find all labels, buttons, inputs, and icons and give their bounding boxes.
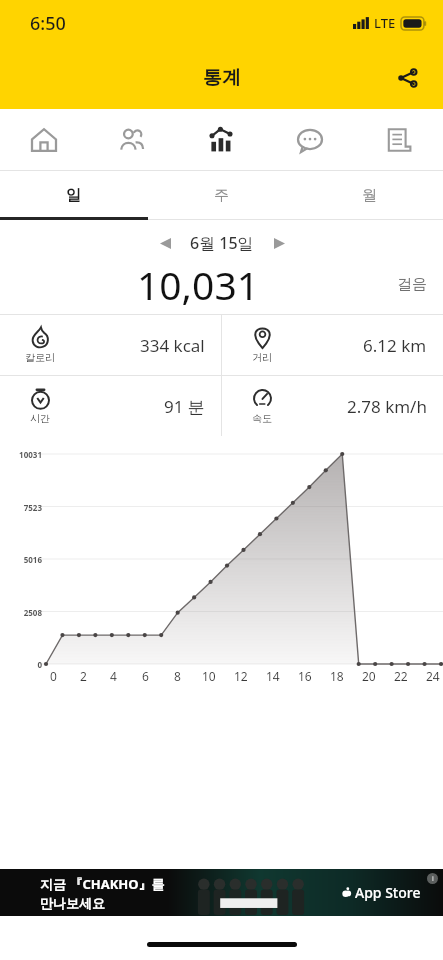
button[interactable]: Statistics xyxy=(176,109,265,171)
button[interactable]: 칼로리 xyxy=(0,315,221,375)
staticText: 지금 『CHAKHO』를 xyxy=(40,875,165,893)
staticText: 0 xyxy=(50,668,57,684)
staticText: 속도 xyxy=(252,412,272,425)
staticText: 6 xyxy=(142,668,149,684)
button[interactable]: 일 xyxy=(0,171,147,220)
staticText: 통계 xyxy=(203,66,241,90)
staticText: 7523 xyxy=(23,502,42,513)
staticText: 시간 xyxy=(30,412,50,425)
staticText: 16 xyxy=(298,668,312,684)
staticText: i xyxy=(432,874,434,884)
staticText: 14 xyxy=(266,668,280,684)
button[interactable]: Chat xyxy=(265,109,354,171)
staticText: 8 xyxy=(174,668,181,684)
staticText: 12 xyxy=(234,668,248,684)
staticText: 거리 xyxy=(252,351,272,364)
button[interactable]: 주 xyxy=(147,171,295,220)
staticText: LTE xyxy=(374,14,396,32)
staticText: 10 xyxy=(202,668,216,684)
staticText: 2 xyxy=(80,668,87,684)
button[interactable]: 지금 『CHAKHO』를 xyxy=(0,869,443,916)
button[interactable]: Ad info xyxy=(427,873,438,884)
staticText: 월 xyxy=(362,186,377,205)
staticText: 주 xyxy=(214,186,229,205)
staticText: 20 xyxy=(362,668,376,684)
staticText: 2.78 km/h xyxy=(347,395,427,418)
button[interactable]: Friends xyxy=(88,109,176,171)
button[interactable]: Next day xyxy=(266,230,292,256)
staticText: 만나보세요 xyxy=(40,895,105,911)
button[interactable]: 거리 xyxy=(222,315,443,375)
button[interactable]: Home xyxy=(0,109,88,171)
staticText: 6.12 km xyxy=(363,334,427,357)
staticText: 6월 15일 xyxy=(190,232,254,254)
staticText: 18 xyxy=(330,668,344,684)
button[interactable]: 시간 xyxy=(0,376,221,436)
staticText: 0 xyxy=(37,659,42,670)
staticText: 24 xyxy=(426,668,440,684)
staticText: 22 xyxy=(394,668,408,684)
button[interactable]: 속도 xyxy=(222,376,443,436)
staticText: 10031 xyxy=(19,449,42,460)
button[interactable]: Previous day xyxy=(152,230,178,256)
button[interactable]: Share xyxy=(385,56,429,100)
staticText: 334 kcal xyxy=(140,334,205,357)
staticText: 일 xyxy=(66,186,81,205)
staticText: 걸음 xyxy=(397,275,427,294)
staticText: 칼로리 xyxy=(25,351,55,364)
staticText: 2508 xyxy=(23,607,42,618)
button[interactable]: News xyxy=(354,109,443,171)
staticText: 6:50 xyxy=(30,11,66,36)
staticText: 10,031 xyxy=(137,258,259,311)
staticText: App Store xyxy=(355,883,421,902)
staticText: 91 분 xyxy=(164,395,205,418)
button[interactable]: 월 xyxy=(295,171,443,220)
staticText: 4 xyxy=(110,668,117,684)
staticText: 5016 xyxy=(23,554,42,565)
